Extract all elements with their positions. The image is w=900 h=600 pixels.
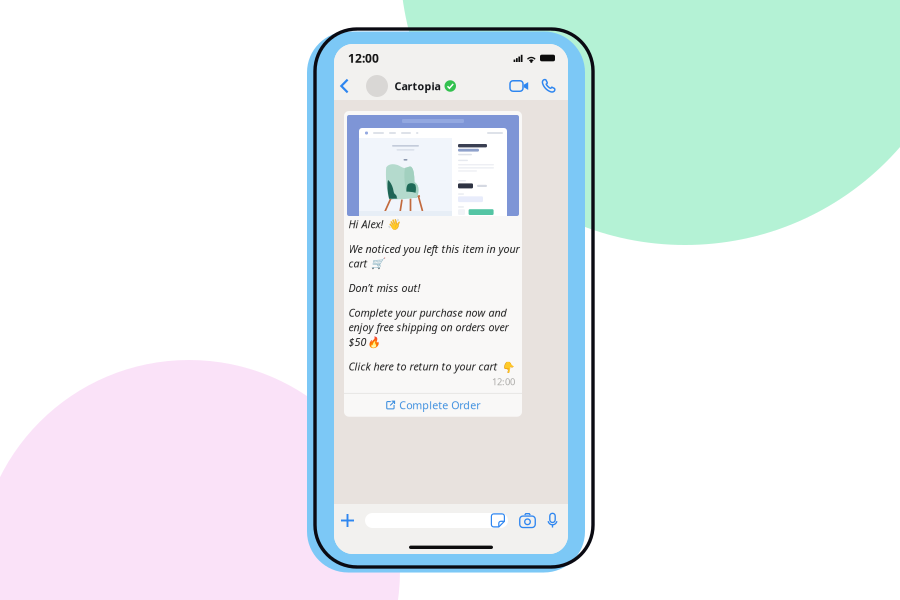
staticText: Complete Order	[399, 398, 480, 412]
button[interactable]: Stickers	[490, 513, 505, 528]
button[interactable]: Voice call	[539, 72, 558, 99]
button[interactable]: Video call	[508, 72, 531, 99]
staticText: Cartopia	[394, 79, 440, 93]
button[interactable]: Camera	[519, 507, 536, 533]
staticText: We noticed you left this item in your ca…	[348, 242, 519, 270]
staticText: Complete your purchase now and enjoy fre…	[348, 306, 508, 349]
staticText: Hi Alex! 👋	[348, 217, 399, 231]
staticText: Click here to return to your cart 👇	[348, 359, 513, 374]
button[interactable]: Voice message	[546, 507, 559, 533]
staticText: Don’t miss out!	[348, 281, 420, 295]
button[interactable]: Back	[335, 72, 354, 99]
staticText: 12:00	[492, 375, 515, 388]
button[interactable]: Complete Order	[344, 394, 522, 417]
button[interactable]: Attach	[338, 507, 356, 533]
staticText: 12:00	[348, 50, 379, 66]
